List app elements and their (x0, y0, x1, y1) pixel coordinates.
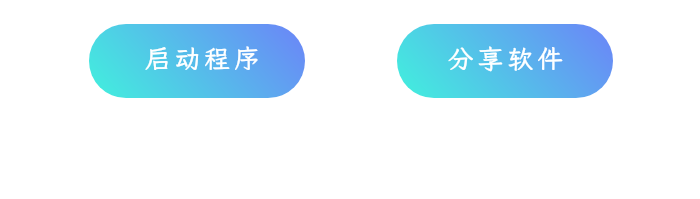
staticText: 启动程序 (145, 42, 264, 76)
staticText: 分享软件 (448, 42, 567, 76)
button[interactable]: 启动程序 (89, 24, 305, 98)
button[interactable]: 分享软件 (397, 24, 613, 98)
